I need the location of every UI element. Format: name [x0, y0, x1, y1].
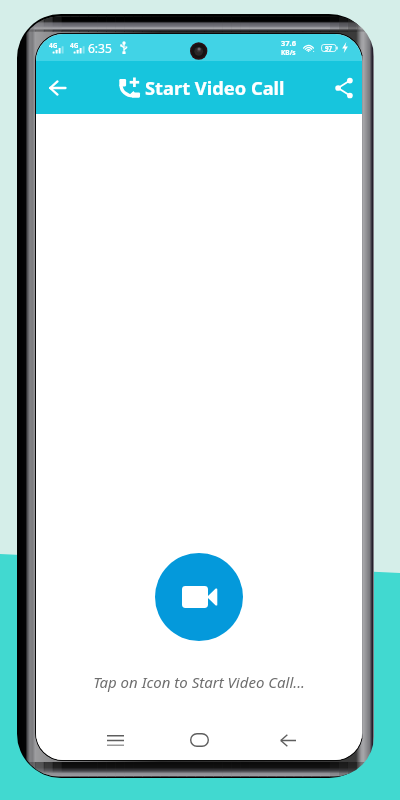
- staticText: 4G: [49, 41, 58, 50]
- staticText: 4G: [70, 41, 79, 50]
- button[interactable]: Share: [326, 70, 362, 106]
- staticText: Start Video Call: [145, 75, 285, 100]
- staticText: Tap on Icon to Start Video Call...: [93, 672, 305, 692]
- button[interactable]: Home: [180, 721, 218, 759]
- button[interactable]: Back: [269, 721, 307, 759]
- staticText: 97: [325, 44, 333, 52]
- button[interactable]: Recent apps: [96, 721, 134, 759]
- staticText: 6:35: [88, 40, 112, 56]
- button[interactable]: Back: [39, 70, 75, 106]
- button[interactable]: Start Video Call: [155, 553, 243, 641]
- staticText: 37.6: [281, 38, 296, 48]
- staticText: KB/s: [281, 48, 296, 57]
